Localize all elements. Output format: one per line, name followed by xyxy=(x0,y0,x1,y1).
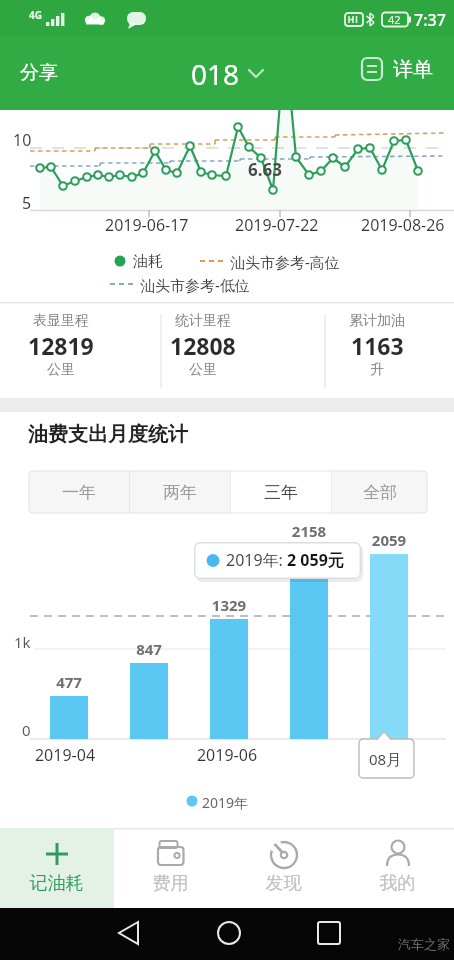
staticText: 12819 xyxy=(28,330,94,361)
staticText: 汕头市参考-低位 xyxy=(140,275,250,295)
staticText: 一年 xyxy=(62,482,96,503)
button[interactable]: 费用 xyxy=(114,828,228,908)
staticText: 1163 xyxy=(351,330,404,361)
staticText: 2019年 xyxy=(202,793,249,812)
staticText: 08月 xyxy=(369,749,402,769)
staticText: 汕头市参考-高位 xyxy=(230,252,340,272)
staticText: 三年 xyxy=(264,482,298,503)
staticText: 我的 xyxy=(341,872,454,895)
button[interactable] xyxy=(70,908,170,960)
staticText: 0 xyxy=(22,720,31,740)
button[interactable]: 记油耗 xyxy=(0,828,114,908)
staticText: 2158 xyxy=(279,521,339,541)
staticText: 公里 xyxy=(47,361,75,379)
button[interactable]: 018 xyxy=(150,54,304,94)
button[interactable]: 累计加油 xyxy=(317,312,437,379)
button[interactable]: 全部 xyxy=(332,471,427,513)
button[interactable]: 一年 xyxy=(29,471,129,513)
staticText: 记油耗 xyxy=(0,872,113,895)
staticText: 6.63 xyxy=(248,158,282,181)
button[interactable]: 分享 xyxy=(8,50,70,96)
staticText: 升 xyxy=(370,361,384,379)
staticText: 油费支出月度统计 xyxy=(28,422,188,447)
staticText: 1329 xyxy=(199,595,259,615)
staticText: 2019-06-17 xyxy=(105,214,189,236)
button[interactable]: 统计里程 xyxy=(133,312,273,379)
staticText: 018 xyxy=(191,55,240,93)
staticText: 油耗 xyxy=(133,252,163,271)
staticText: 1k xyxy=(14,632,31,652)
button[interactable]: 两年 xyxy=(130,471,230,513)
staticText: 分享 xyxy=(20,61,58,85)
staticText: 12808 xyxy=(170,330,236,361)
staticText: 5 xyxy=(22,192,32,214)
staticText: 7:37 xyxy=(414,9,446,31)
staticText: 累计加油 xyxy=(349,312,405,330)
staticText: 2019-07-22 xyxy=(235,214,319,236)
staticText: 4G xyxy=(29,8,42,22)
staticText: 2019-06 xyxy=(187,744,267,766)
button[interactable]: 详单 xyxy=(360,56,433,82)
button[interactable]: 我的 xyxy=(341,828,454,908)
staticText: 2019年: 2 059元 xyxy=(226,549,344,571)
staticText: 2019-08-26 xyxy=(361,214,445,236)
staticText: 2059 xyxy=(359,530,419,550)
staticText: 统计里程 xyxy=(175,312,231,330)
staticText: 发现 xyxy=(227,872,340,895)
staticText: 847 xyxy=(119,639,179,659)
button[interactable] xyxy=(180,908,280,960)
button[interactable]: 三年 xyxy=(231,471,331,513)
button[interactable]: 发现 xyxy=(227,828,341,908)
staticText: 汽车之家 xyxy=(398,936,450,952)
staticText: 全部 xyxy=(363,482,397,503)
staticText: 477 xyxy=(39,672,99,692)
staticText: 表显里程 xyxy=(33,312,89,330)
staticText: 42 xyxy=(388,12,401,27)
staticText: 两年 xyxy=(163,482,197,503)
staticText: 费用 xyxy=(114,872,227,895)
staticText: 详单 xyxy=(393,57,433,82)
staticText: 2019-04 xyxy=(25,744,105,766)
button[interactable]: 表显里程 xyxy=(1,312,121,379)
button[interactable] xyxy=(290,908,390,960)
staticText: 10 xyxy=(13,129,32,151)
staticText: 公里 xyxy=(189,361,217,379)
